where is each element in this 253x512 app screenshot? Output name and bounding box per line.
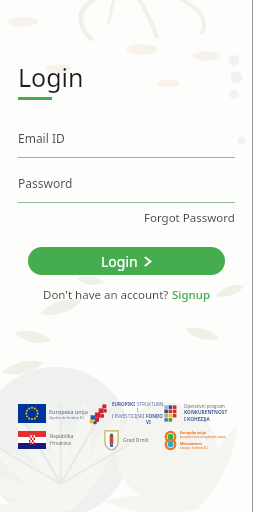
staticText: Password — [18, 175, 73, 191]
staticText: razvoja i fondova EU — [180, 446, 208, 450]
staticText: I INVESTICIJSKI — [112, 413, 146, 419]
staticText: Europska unija — [180, 430, 206, 435]
staticText: Operativni program — [184, 403, 225, 409]
staticText: KONKURENTNOST — [184, 409, 228, 416]
button[interactable]: Login — [28, 247, 225, 275]
staticText: Republika Hrvatska — [50, 433, 89, 447]
staticText: Ministarstvo — [180, 441, 203, 446]
staticText: Zajedno do fondova EU — [49, 416, 84, 420]
button[interactable]: Email ID — [18, 130, 235, 158]
button[interactable]: Signup — [172, 287, 211, 303]
staticText: Signup — [172, 287, 211, 303]
staticText: Don't have an account? — [43, 287, 172, 303]
staticText: Login — [101, 252, 138, 271]
staticText: Grad Drniš — [123, 437, 149, 444]
button[interactable]: Forgot Password — [18, 210, 235, 226]
button[interactable]: Password — [18, 175, 235, 203]
staticText: STRUKTURNI — [137, 401, 164, 413]
staticText: Europska unija — [49, 408, 88, 416]
staticText: FONDOVI — [146, 413, 164, 425]
staticText: EUROPSKI — [112, 401, 137, 407]
staticText: Login — [18, 60, 84, 94]
staticText: Email ID — [18, 130, 65, 146]
staticText: Europski fond za regionalni razvoj — [180, 435, 226, 439]
staticText: I KOHEZIJA — [184, 416, 210, 423]
staticText: Forgot Password — [144, 210, 235, 226]
